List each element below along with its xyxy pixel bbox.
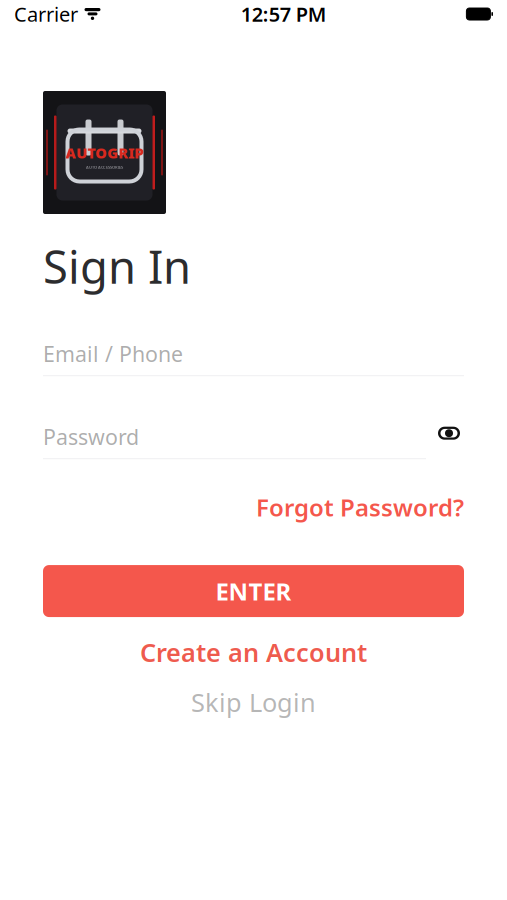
button[interactable]: Forgot Password?: [256, 487, 464, 527]
staticText: Sign In: [43, 236, 191, 296]
staticText: Carrier: [14, 1, 78, 27]
staticText: Forgot Password?: [256, 491, 464, 523]
staticText: Password: [43, 422, 139, 451]
staticText: ENTER: [215, 575, 291, 607]
staticText: Skip Login: [191, 685, 316, 719]
staticText: Create an Account: [140, 635, 367, 669]
button[interactable]: Create an Account: [43, 635, 464, 669]
staticText: 12:57 PM: [241, 1, 327, 27]
button[interactable]: Skip Login: [43, 685, 464, 719]
button[interactable]: ENTER: [43, 565, 464, 617]
staticText: AUTOGRIP: [65, 143, 143, 163]
button[interactable]: Email / Phone: [43, 332, 464, 376]
staticText: AUTO ACCESSORIES: [86, 165, 123, 170]
staticText: Email / Phone: [43, 339, 183, 368]
button[interactable]: Show password: [434, 418, 464, 448]
